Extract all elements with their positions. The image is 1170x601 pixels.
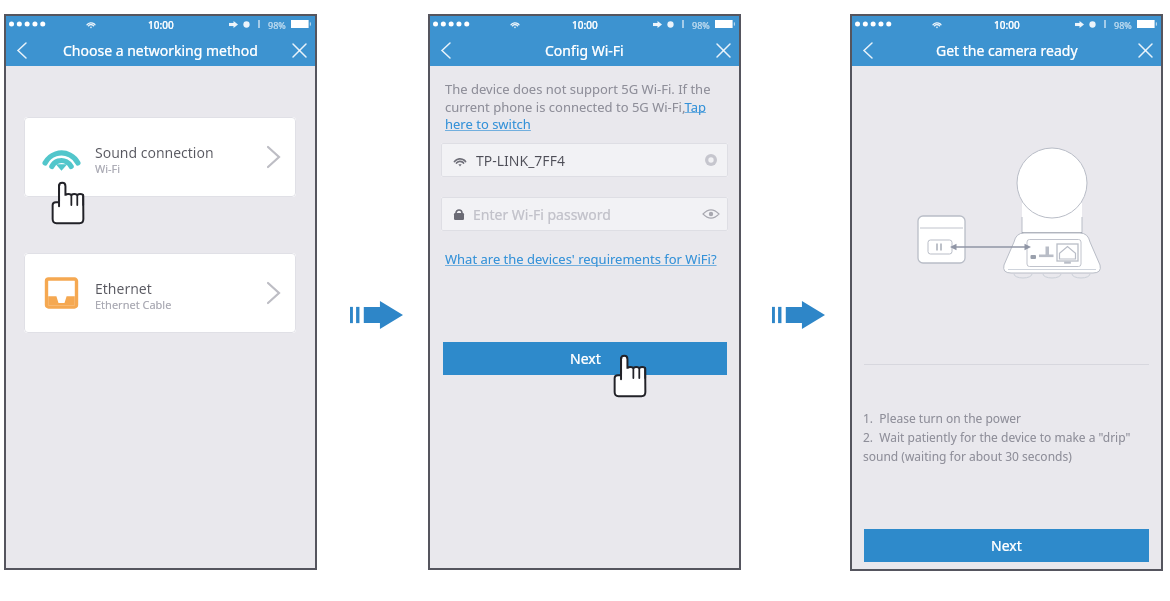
staticText: 98% bbox=[1114, 19, 1132, 31]
button[interactable]: Back bbox=[850, 34, 886, 66]
button[interactable]: TP-LINK_7FF4 bbox=[441, 143, 728, 177]
button[interactable]: The device does not support 5G Wi-Fi. If… bbox=[445, 80, 711, 133]
staticText: Ethernet bbox=[95, 279, 152, 298]
staticText: Wi-Fi bbox=[95, 161, 121, 176]
staticText: 1. Please turn on the power 2. Wait pati… bbox=[863, 410, 1131, 464]
button[interactable]: Next bbox=[443, 342, 727, 375]
staticText: Enter Wi-Fi password bbox=[473, 205, 611, 224]
staticText: 10:00 bbox=[994, 18, 1020, 32]
button[interactable]: What are the devices' requirements for W… bbox=[445, 250, 717, 268]
staticText: Sound connection bbox=[95, 143, 214, 162]
button[interactable]: Sound connection bbox=[24, 117, 296, 197]
button[interactable]: Close bbox=[705, 34, 741, 66]
staticText: 10:00 bbox=[572, 18, 598, 32]
staticText: Next bbox=[991, 536, 1022, 555]
button[interactable]: Back bbox=[4, 34, 40, 66]
staticText: 10:00 bbox=[148, 18, 174, 32]
staticText: Next bbox=[570, 349, 601, 368]
staticText: Get the camera ready bbox=[936, 41, 1078, 60]
button[interactable]: Next bbox=[864, 529, 1149, 562]
staticText: 98% bbox=[692, 19, 710, 31]
button[interactable]: Enter Wi-Fi password bbox=[441, 197, 728, 231]
button[interactable]: Close bbox=[1127, 34, 1163, 66]
staticText: TP-LINK_7FF4 bbox=[476, 151, 565, 170]
staticText: 98% bbox=[268, 19, 286, 31]
staticText: Choose a networking method bbox=[63, 41, 258, 60]
button[interactable]: Close bbox=[281, 34, 317, 66]
staticText: Ethernet Cable bbox=[95, 297, 172, 312]
staticText: Config Wi-Fi bbox=[545, 41, 624, 60]
button[interactable]: Back bbox=[428, 34, 464, 66]
button[interactable]: Ethernet bbox=[24, 253, 296, 333]
